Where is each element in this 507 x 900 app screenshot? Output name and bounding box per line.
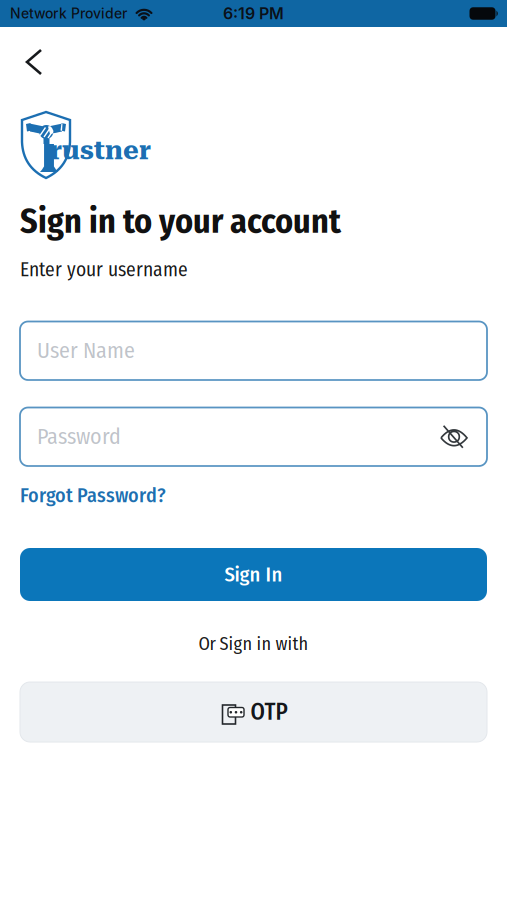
button[interactable]: Show password xyxy=(437,423,471,450)
button[interactable]: Back xyxy=(19,44,49,80)
staticText: Network Provider xyxy=(10,5,127,22)
staticText: Sign In xyxy=(224,562,282,587)
staticText: User Name xyxy=(37,337,135,364)
staticText: Or Sign in with xyxy=(198,633,308,655)
button[interactable]: Forgot Password? xyxy=(20,483,166,507)
staticText: rustner xyxy=(50,134,151,166)
button[interactable]: User Name xyxy=(20,321,487,380)
button[interactable]: Password xyxy=(20,407,487,466)
staticText: Password xyxy=(37,423,121,450)
staticText: Forgot Password? xyxy=(20,483,166,507)
staticText: 6:19 PM xyxy=(223,4,284,23)
button[interactable]: OTP xyxy=(20,682,487,742)
staticText: OTP xyxy=(250,698,287,726)
staticText: Enter your username xyxy=(20,258,188,281)
staticText: Sign in to your account xyxy=(20,201,341,242)
button[interactable]: Sign In xyxy=(20,548,487,601)
